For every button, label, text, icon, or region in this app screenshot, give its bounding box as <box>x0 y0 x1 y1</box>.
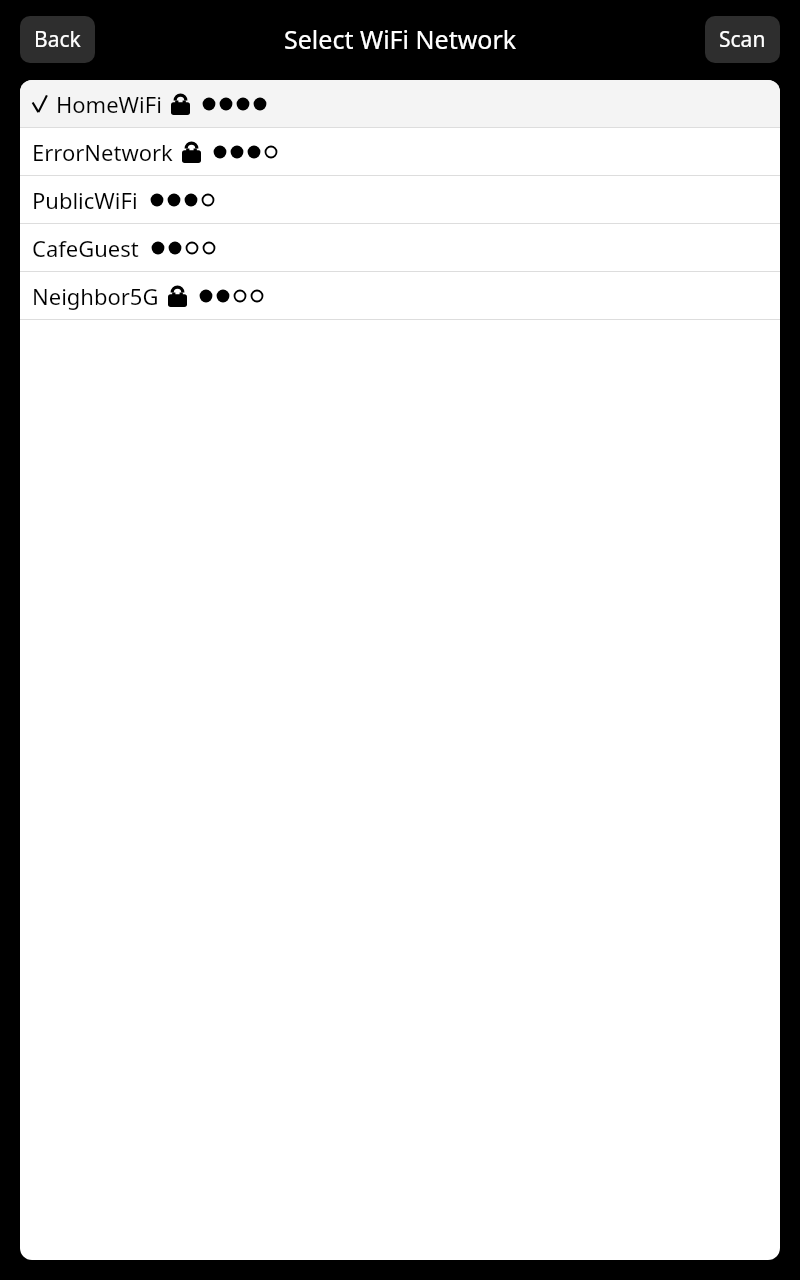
button[interactable]: Scan <box>705 16 780 63</box>
button[interactable]: Back <box>20 16 95 63</box>
other: Secured network <box>171 93 190 115</box>
button[interactable]: PublicWiFi <box>20 176 780 223</box>
other: Secured network <box>182 141 201 163</box>
staticText: CafeGuest <box>32 233 139 263</box>
button[interactable]: HomeWiFi <box>20 80 780 127</box>
staticText: PublicWiFi <box>32 185 138 215</box>
staticText: Back <box>34 25 81 54</box>
button[interactable]: Neighbor5G <box>20 272 780 319</box>
other: Secured network <box>168 285 187 307</box>
staticText: Select WiFi Network <box>284 22 517 56</box>
staticText: Scan <box>719 25 766 54</box>
button[interactable]: ErrorNetwork <box>20 128 780 175</box>
staticText: ErrorNetwork <box>32 137 173 167</box>
staticText: Neighbor5G <box>32 281 159 311</box>
staticText: HomeWiFi <box>56 89 162 119</box>
button[interactable]: CafeGuest <box>20 224 780 271</box>
